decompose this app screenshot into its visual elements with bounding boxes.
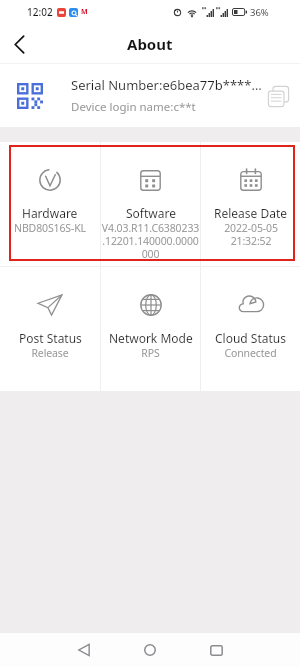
button[interactable]: Recent apps (201, 635, 231, 665)
staticText: Software (126, 205, 176, 221)
button[interactable]: Hardware (0, 142, 100, 266)
button[interactable]: Release Date (201, 142, 300, 266)
staticText: V4.03.R11.C6380233.12201.140000.0000000 (101, 221, 200, 261)
staticText: Cloud Status (215, 330, 287, 346)
button[interactable]: Back (0, 25, 38, 63)
staticText: Post Status (19, 330, 82, 346)
button[interactable]: Network Mode (101, 267, 200, 391)
staticText: Device login name:c**t (71, 99, 196, 115)
button[interactable]: Copy serial number (265, 83, 291, 109)
staticText: 2022-05-05 21:32:52 (224, 221, 278, 248)
staticText: 12:02 (27, 5, 53, 19)
button[interactable]: Cloud Status (201, 267, 300, 391)
button[interactable]: Serial Number:e6bea77b****8… (0, 64, 300, 127)
staticText: 36% (250, 6, 269, 19)
button[interactable]: Post Status (0, 267, 100, 391)
staticText: NBD80S16S-KL (14, 221, 86, 235)
staticText: Release Date (214, 205, 288, 221)
staticText: Release (31, 346, 69, 360)
staticText: RPS (141, 346, 160, 360)
staticText: Connected (224, 346, 277, 360)
button[interactable]: Home (135, 635, 165, 665)
staticText: About (127, 34, 173, 54)
staticText: M (81, 7, 88, 17)
button[interactable]: Back (69, 635, 99, 665)
staticText: Serial Number:e6bea77b****8… (71, 76, 263, 94)
staticText: Hardware (22, 205, 78, 221)
button[interactable]: Software (101, 142, 200, 266)
staticText: Network Mode (109, 330, 193, 346)
